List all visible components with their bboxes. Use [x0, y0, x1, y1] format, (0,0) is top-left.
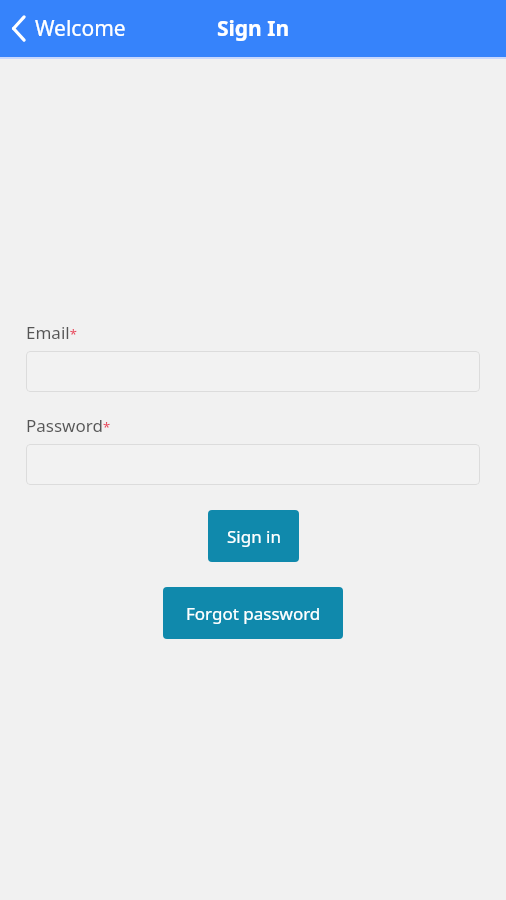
- staticText: Email*: [26, 321, 77, 344]
- button[interactable]: Welcome: [8, 8, 129, 49]
- staticText: Forgot password: [186, 602, 321, 625]
- staticText: Password*: [26, 414, 111, 437]
- button[interactable]: [26, 351, 480, 392]
- staticText: Sign in: [227, 525, 281, 548]
- button[interactable]: [26, 444, 480, 485]
- staticText: Sign In: [217, 14, 290, 43]
- button[interactable]: Forgot password: [163, 587, 343, 639]
- button[interactable]: Sign in: [208, 510, 299, 562]
- staticText: Welcome: [35, 14, 126, 43]
